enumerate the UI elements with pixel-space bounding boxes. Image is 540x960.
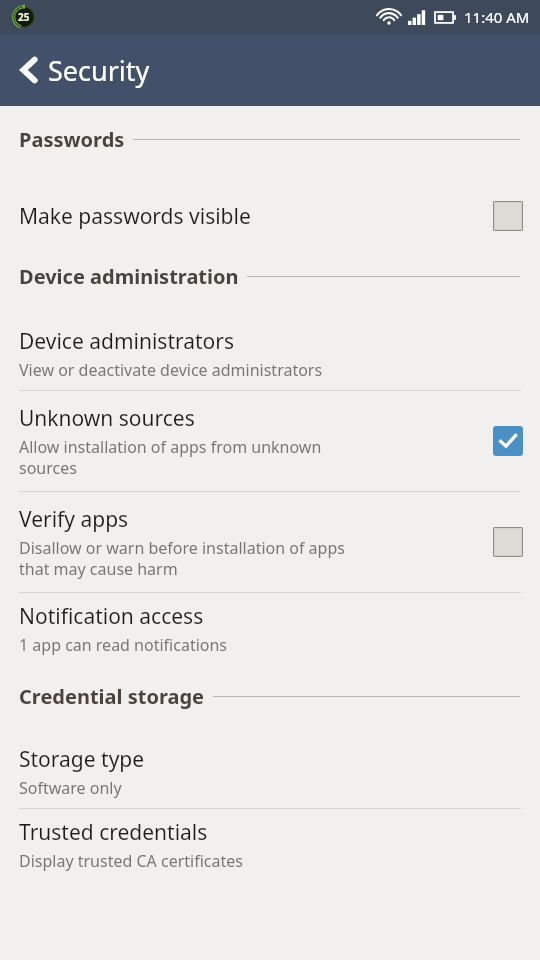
button[interactable]: Trusted credentials	[0, 809, 540, 881]
button[interactable]: Unchecked	[492, 526, 524, 558]
staticText: Credential storage	[19, 683, 205, 710]
staticText: 1 app can read notifications	[19, 634, 228, 656]
staticText: 11:40 AM	[464, 7, 530, 27]
staticText: Device administrators	[19, 327, 235, 356]
button[interactable]: Verify apps	[0, 492, 540, 592]
staticText: View or deactivate device administrators	[19, 359, 323, 381]
staticText: Trusted credentials	[19, 818, 208, 847]
staticText: Notification access	[19, 602, 204, 631]
button[interactable]: Storage type	[0, 736, 540, 808]
button[interactable]: Device administrators	[0, 318, 540, 390]
staticText: 25	[18, 10, 30, 24]
staticText: Disallow or warn before installation of …	[19, 537, 345, 580]
staticText: Make passwords visible	[19, 202, 251, 231]
button[interactable]: Unknown sources	[0, 391, 540, 491]
button[interactable]: Make passwords visible	[0, 187, 540, 245]
staticText: Unknown sources	[19, 404, 195, 433]
button[interactable]: Unchecked	[492, 200, 524, 232]
staticText: Security	[48, 52, 150, 89]
button[interactable]: Checked	[492, 425, 524, 457]
staticText: Device administration	[19, 263, 239, 290]
staticText: Software only	[19, 777, 122, 799]
staticText: Verify apps	[19, 505, 129, 534]
staticText: Display trusted CA certificates	[19, 850, 243, 872]
staticText: Storage type	[19, 745, 145, 774]
staticText: Allow installation of apps from unknown …	[19, 436, 322, 479]
staticText: Passwords	[19, 126, 125, 153]
button[interactable]: Back	[0, 46, 48, 94]
button[interactable]: Notification access	[0, 593, 540, 665]
